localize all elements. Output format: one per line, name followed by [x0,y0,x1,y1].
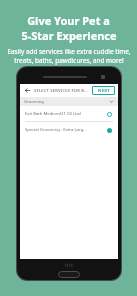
button[interactable]: Grooming [20,97,118,106]
staticText: NEXT [98,88,110,94]
staticText: Give Your Pet a [27,13,110,28]
staticText: treats, baths, pawdicures, and more! [14,56,124,65]
staticText: Exit Bath Medium(21-50 Lbs) [25,111,102,117]
button[interactable]: Exit Bath Medium(21-50 Lbs) [20,106,118,121]
button[interactable]: Selected service [105,126,113,134]
button[interactable]: Special Grooming - Extra Larg... [20,122,118,137]
button[interactable]: Back [23,86,32,95]
button[interactable]: Select service [105,110,113,118]
staticText: Grooming [24,99,44,105]
staticText: SELECT SERVICES FOR BUDDY [34,88,90,94]
staticText: Easily add services like extra cuddle ti… [7,47,131,56]
staticText: 5-Star Experience [21,28,117,43]
staticText: htc [65,262,74,269]
button[interactable]: NEXT [92,86,115,95]
button[interactable]: Home [58,271,80,278]
staticText: Special Grooming - Extra Larg... [25,127,102,133]
